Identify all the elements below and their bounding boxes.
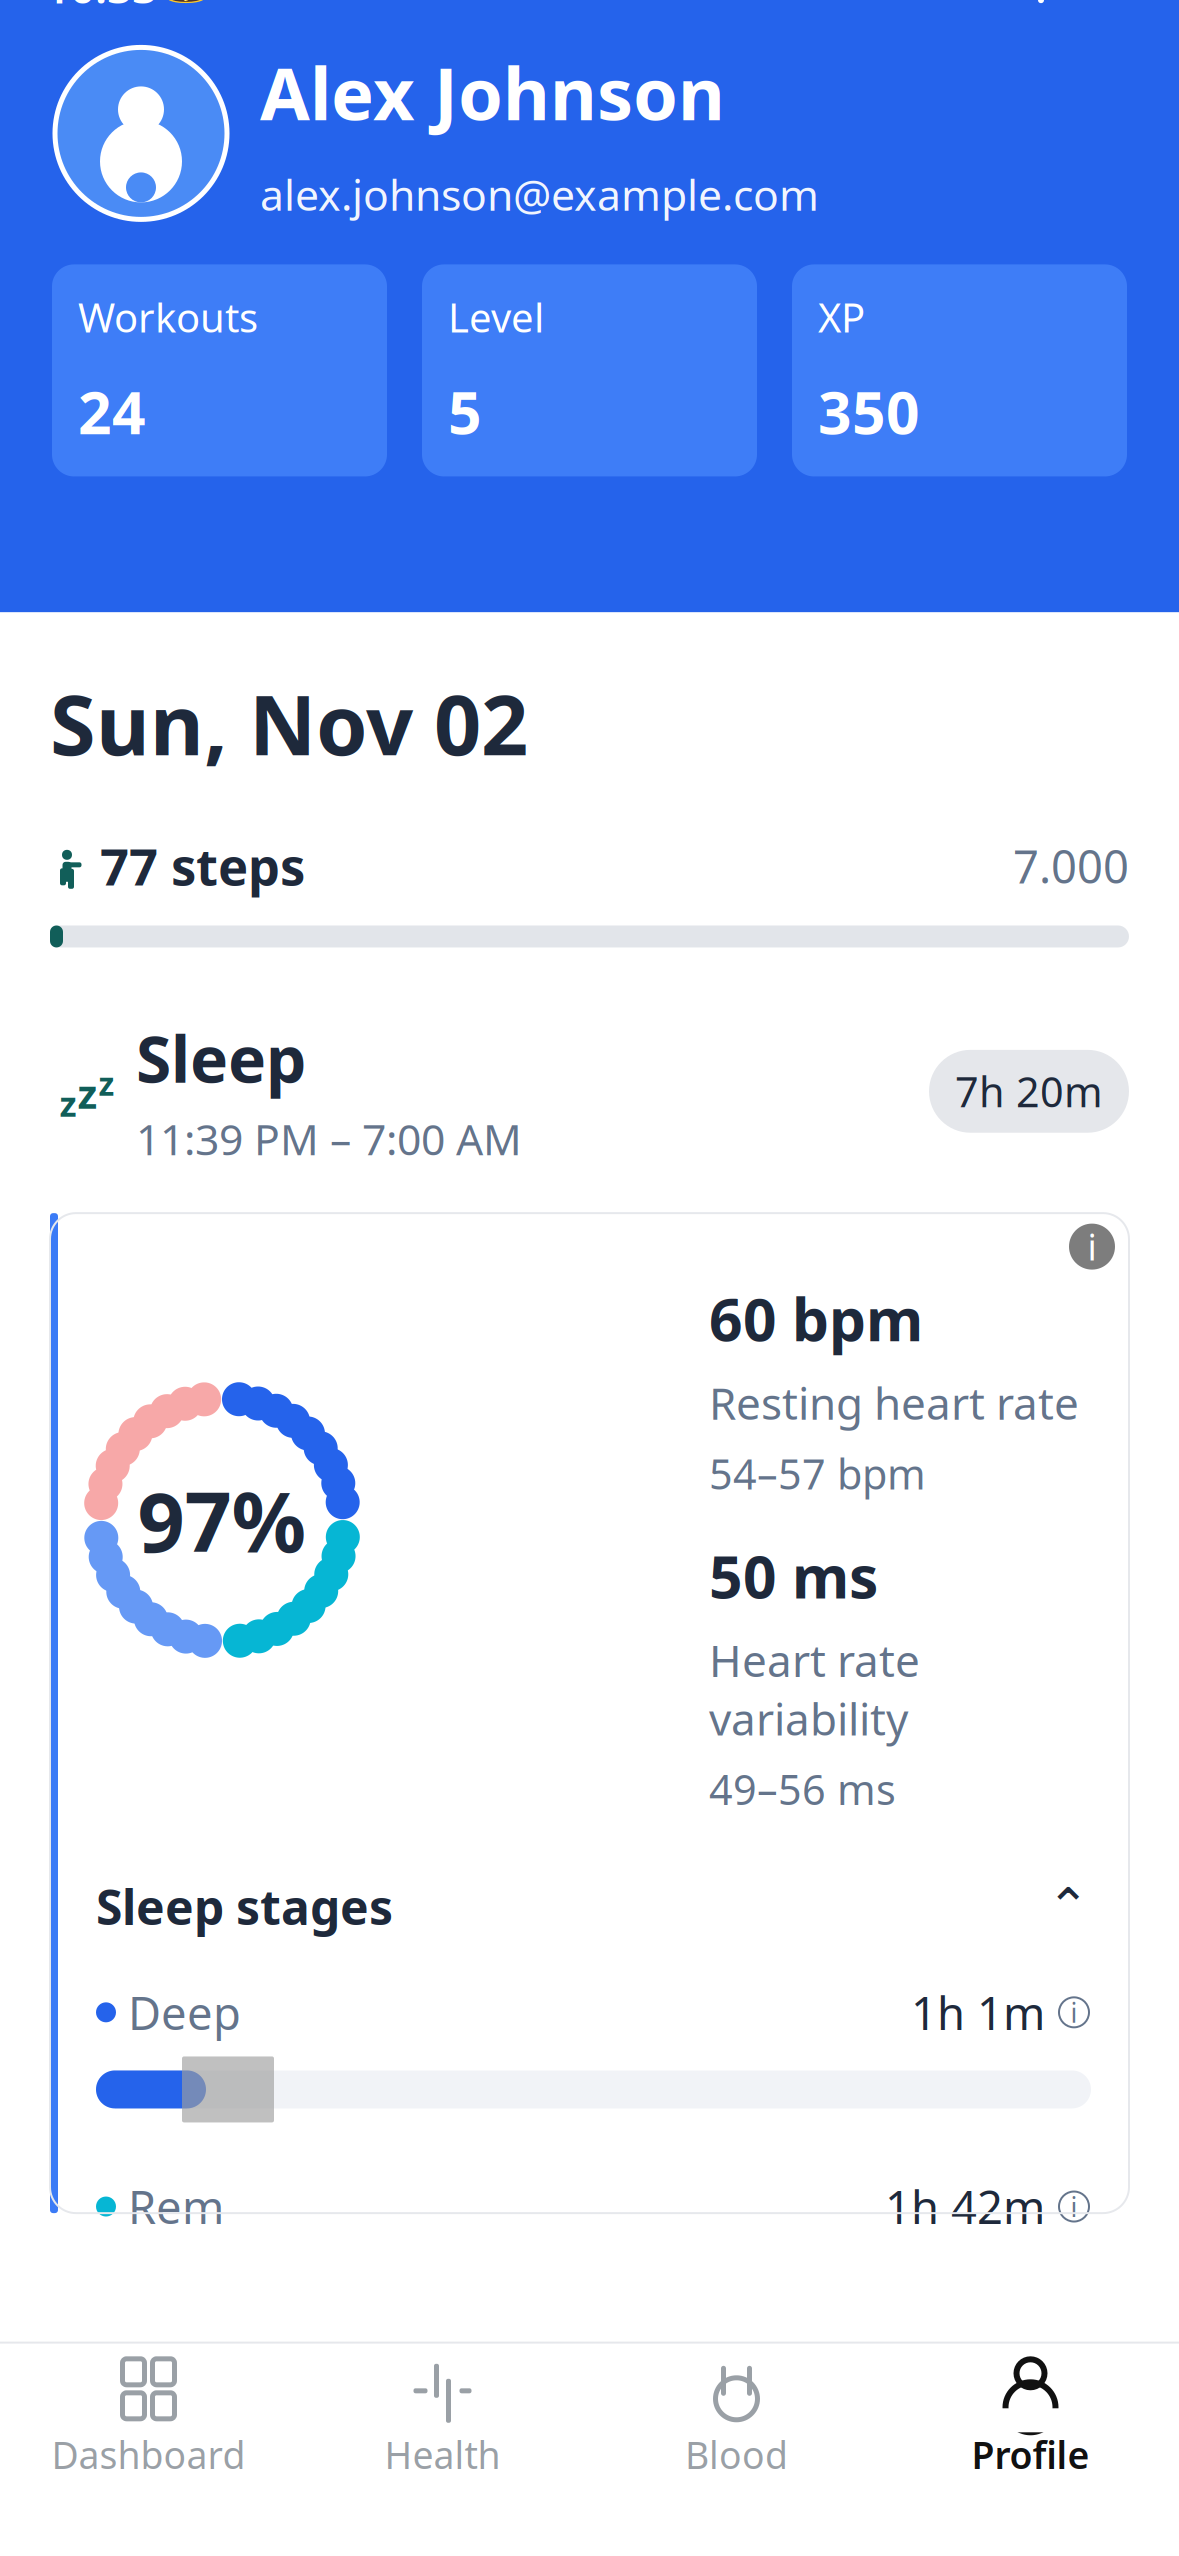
staticText: 60 bpm: [709, 1280, 923, 1357]
staticText: Sun, Nov 02: [50, 668, 528, 778]
staticText: i: [1070, 2189, 1077, 2224]
button[interactable]: Health: [295, 2344, 589, 2494]
staticText: i: [1070, 1995, 1077, 2030]
staticText: 24: [78, 372, 146, 450]
button[interactable]: About heart metrics: [1069, 1224, 1115, 1270]
staticText: Blood: [685, 2430, 788, 2479]
staticText: Workouts: [78, 290, 258, 343]
staticText: 50 ms: [709, 1537, 878, 1615]
staticText: 49–56 ms: [709, 1762, 896, 1816]
staticText: z: [98, 1062, 114, 1104]
staticText: 7.000: [1013, 836, 1129, 896]
staticText: i: [1087, 1223, 1096, 1270]
staticText: 7h 20m: [955, 1064, 1103, 1119]
staticText: XP: [818, 290, 865, 343]
staticText: 77 steps: [100, 832, 305, 899]
staticText: 350: [818, 372, 920, 450]
staticText: Resting heart rate: [709, 1373, 1079, 1432]
staticText: 1h 1m: [911, 1982, 1045, 2042]
staticText: Level: [448, 290, 544, 343]
staticText: 🔔: [166, 0, 206, 5]
button[interactable]: XP: [792, 264, 1127, 476]
button[interactable]: Collapse sleep stages: [1045, 1883, 1091, 1929]
button[interactable]: About Rem sleep: [1057, 2189, 1091, 2223]
staticText: Dashboard: [51, 2430, 245, 2479]
staticText: Profile: [971, 2430, 1089, 2479]
staticText: 11:39 PM – 7:00 AM: [136, 1110, 522, 1167]
staticText: 1h 42m: [885, 2176, 1045, 2237]
staticText: Deep: [128, 1982, 241, 2042]
button[interactable]: Workouts: [52, 264, 387, 476]
staticText: 5: [448, 372, 482, 450]
staticText: 97%: [137, 1465, 306, 1575]
staticText: z: [59, 1080, 76, 1126]
staticText: 54–57 bpm: [709, 1446, 926, 1501]
button[interactable]: About Deep sleep: [1057, 1995, 1091, 2029]
button[interactable]: Level: [422, 264, 757, 476]
staticText: 10:33: [45, 0, 157, 16]
button[interactable]: Profile: [883, 2344, 1177, 2494]
button[interactable]: Dashboard: [1, 2344, 295, 2494]
staticText: Heart rate variability: [709, 1631, 920, 1748]
staticText: Alex Johnson: [260, 44, 725, 140]
staticText: Sleep stages: [96, 1874, 393, 1938]
staticText: Sleep: [136, 1015, 306, 1100]
staticText: z: [77, 1067, 97, 1120]
button[interactable]: Blood: [589, 2344, 883, 2494]
staticText: Rem: [128, 2176, 224, 2237]
staticText: ⌃: [1047, 1878, 1089, 1935]
staticText: Health: [384, 2430, 500, 2479]
staticText: alex.johnson@example.com: [260, 166, 819, 222]
